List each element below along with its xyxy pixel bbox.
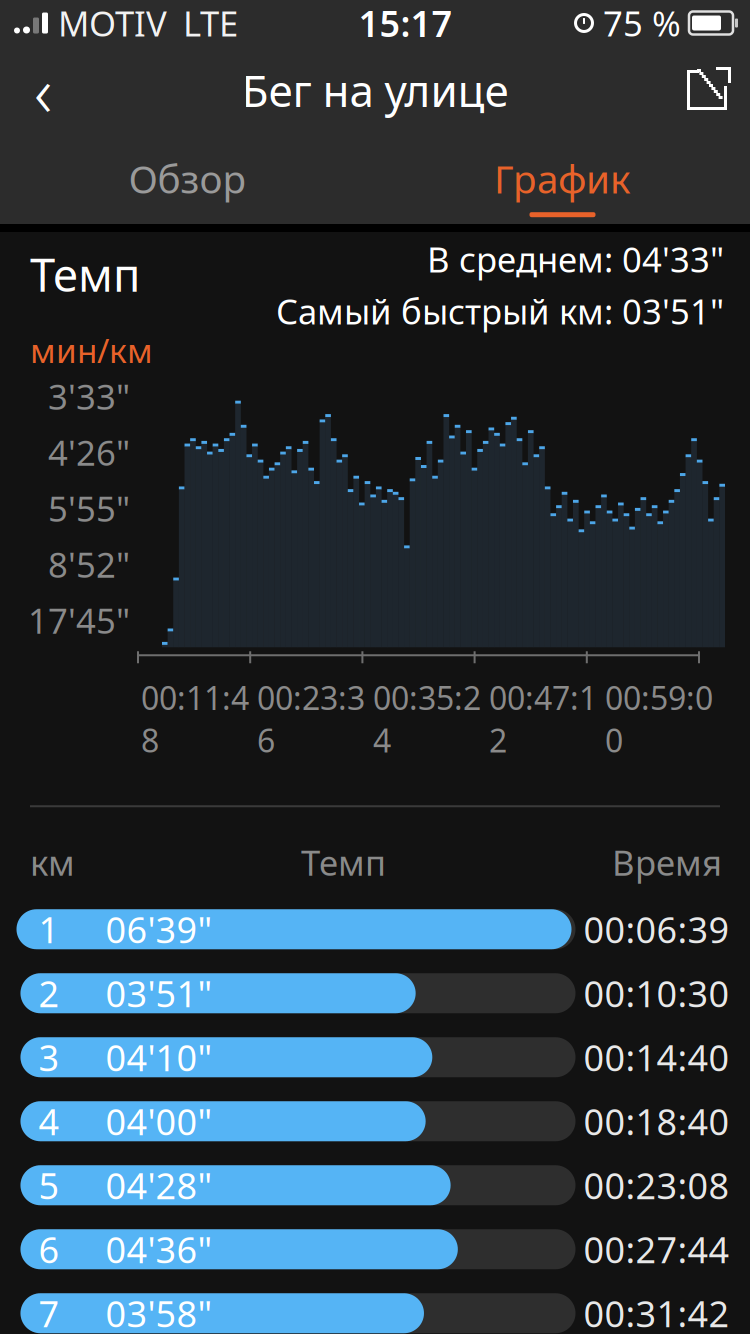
staticText: Обзор xyxy=(128,153,246,204)
staticText: 04'00" xyxy=(105,1097,212,1145)
staticText: 00:11:48 xyxy=(141,676,249,761)
staticText: LTE xyxy=(183,0,238,46)
staticText: В среднем: 04'33" xyxy=(427,236,724,282)
staticText: мин/км xyxy=(30,328,153,372)
staticText: 00:31:42 xyxy=(583,1289,729,1334)
staticText: График xyxy=(494,153,631,204)
button[interactable]: 4 xyxy=(0,1089,750,1153)
staticText: MOTIV xyxy=(58,0,167,46)
staticText: 2 xyxy=(38,969,59,1017)
staticText: 5'55" xyxy=(48,485,130,531)
staticText: 3'33" xyxy=(48,373,130,419)
staticText: 03'51" xyxy=(105,969,212,1017)
button[interactable]: 3 xyxy=(0,1025,750,1089)
staticText: 00:18:40 xyxy=(583,1097,729,1145)
staticText: 04'28" xyxy=(105,1161,212,1209)
button[interactable]: 5 xyxy=(0,1153,750,1217)
staticText: Самый быстрый км: 03'51" xyxy=(276,288,724,334)
staticText: 3 xyxy=(38,1033,59,1081)
staticText: 03'58" xyxy=(105,1289,212,1334)
staticText: 7 xyxy=(38,1289,59,1334)
button[interactable]: 2 xyxy=(0,961,750,1025)
staticText: 00:06:39 xyxy=(583,905,729,953)
staticText: 75 % xyxy=(603,0,681,46)
staticText: 5 xyxy=(38,1161,59,1209)
staticText: 8'52" xyxy=(48,541,130,587)
button[interactable]: 1 xyxy=(0,897,750,961)
staticText: 04'36" xyxy=(105,1225,212,1273)
staticText: 00:47:12 xyxy=(489,676,597,761)
staticText: 15:17 xyxy=(358,0,452,47)
staticText: ‹ xyxy=(34,44,52,136)
staticText: 06'39" xyxy=(105,905,212,953)
staticText: 6 xyxy=(38,1225,59,1273)
staticText: 00:14:40 xyxy=(583,1033,729,1081)
button[interactable]: График xyxy=(375,134,750,224)
button[interactable]: Обзор xyxy=(0,134,375,224)
button[interactable]: 7 xyxy=(0,1281,750,1334)
staticText: Бег на улице xyxy=(241,61,508,119)
staticText: 4 xyxy=(38,1097,59,1145)
button[interactable]: Поделиться xyxy=(664,46,750,134)
button[interactable]: Назад xyxy=(0,46,86,134)
staticText: 17'45" xyxy=(28,597,130,643)
staticText: Темп xyxy=(301,839,386,885)
staticText: 00:27:44 xyxy=(583,1225,729,1273)
staticText: 04'10" xyxy=(105,1033,212,1081)
staticText: 1 xyxy=(38,905,59,953)
staticText: 00:10:30 xyxy=(583,969,729,1017)
button[interactable]: 6 xyxy=(0,1217,750,1281)
staticText: 00:23:36 xyxy=(257,676,365,761)
staticText: 00:23:08 xyxy=(583,1161,729,1209)
staticText: 4'26" xyxy=(48,429,130,475)
staticText: 00:35:24 xyxy=(373,676,481,761)
staticText: Темп xyxy=(30,244,140,304)
staticText: 00:59:00 xyxy=(605,676,713,761)
staticText: Время xyxy=(612,839,722,885)
staticText: км xyxy=(30,839,75,885)
